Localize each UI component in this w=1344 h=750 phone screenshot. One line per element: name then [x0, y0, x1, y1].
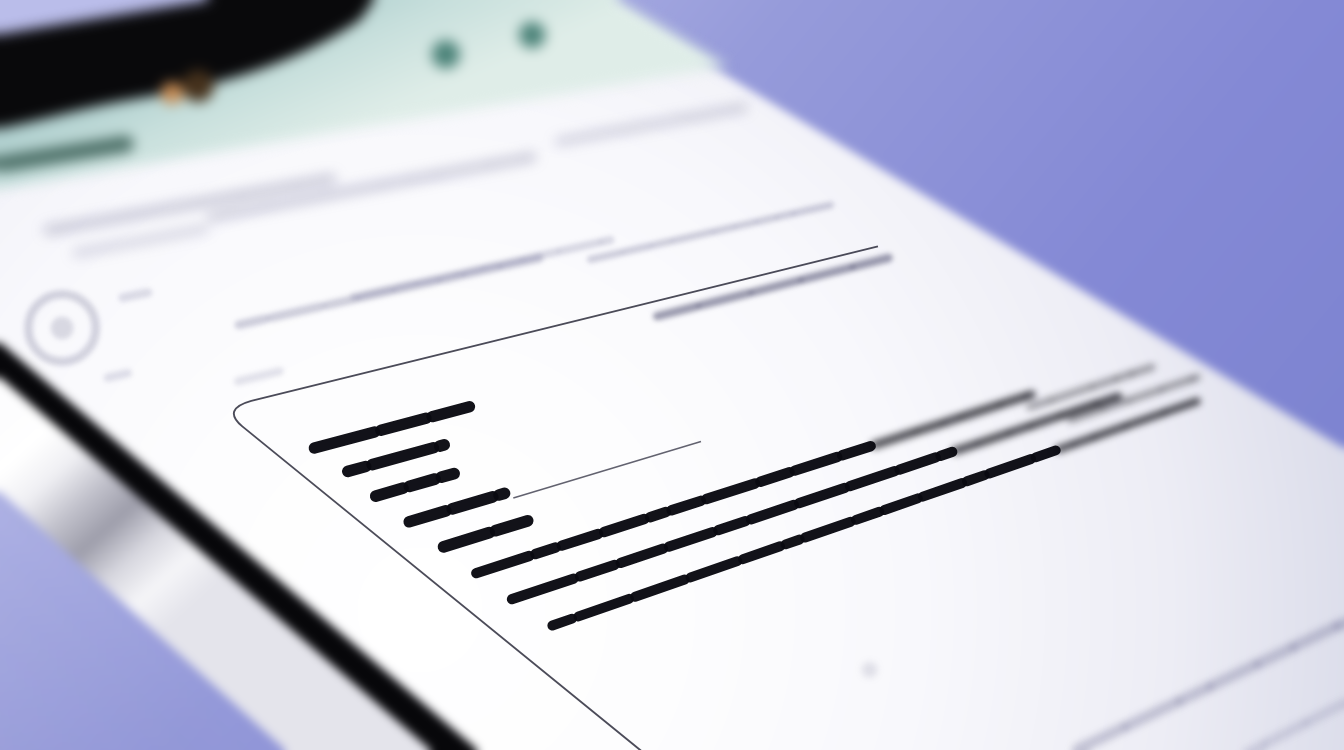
button[interactable]: Phone app screen: [0, 0, 1344, 750]
